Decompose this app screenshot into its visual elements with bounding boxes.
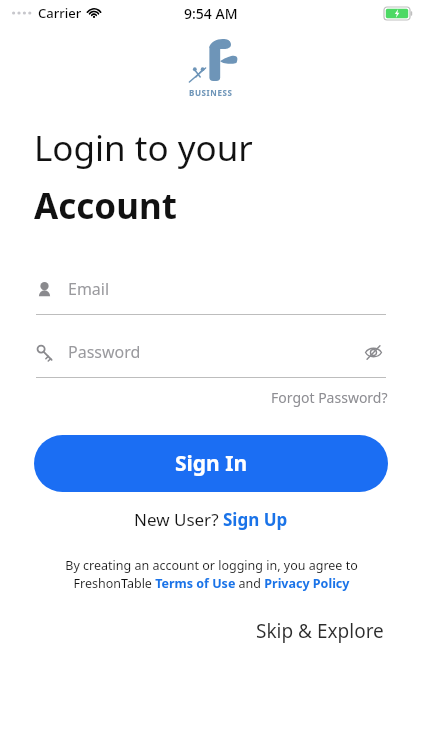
staticText: Carrier: [38, 4, 82, 22]
button[interactable]: Forgot Password?: [269, 384, 390, 411]
button[interactable]: Sign Up: [223, 508, 288, 531]
button[interactable]: By creating an account or logging in, yo…: [24, 557, 398, 592]
staticText: Login to your: [34, 124, 253, 172]
staticText: By creating an account or logging in, yo…: [65, 557, 358, 592]
staticText: Password: [68, 341, 141, 363]
button[interactable]: Skip & Explore: [252, 614, 388, 648]
staticText: Forgot Password?: [271, 388, 388, 407]
button[interactable]: Password: [36, 335, 386, 378]
staticText: Account: [34, 182, 177, 230]
button[interactable]: Sign In: [34, 435, 388, 492]
staticText: Sign In: [175, 449, 248, 478]
button[interactable]: Show password: [360, 339, 386, 365]
staticText: 9:54 AM: [184, 4, 238, 23]
staticText: New User?: [134, 508, 223, 531]
staticText: Skip & Explore: [256, 618, 384, 644]
staticText: BUSINESS: [189, 87, 233, 98]
staticText: Email: [68, 278, 110, 300]
button[interactable]: Email: [36, 272, 386, 315]
staticText: Sign Up: [223, 508, 288, 531]
